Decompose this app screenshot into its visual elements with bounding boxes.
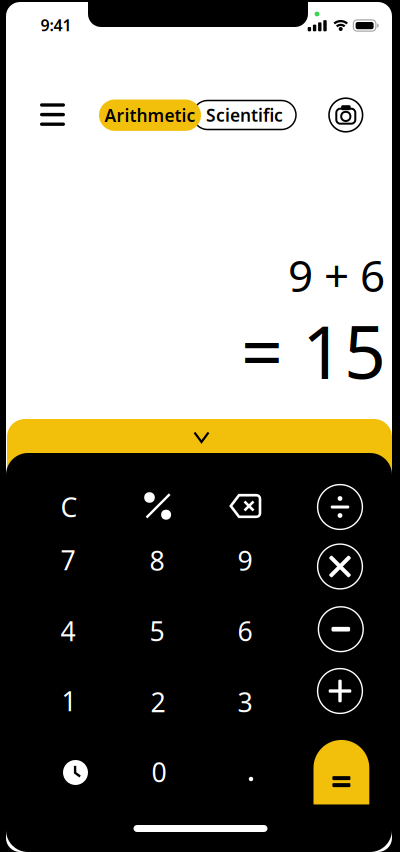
button[interactable]: Percent xyxy=(143,490,173,520)
staticText: Scientific xyxy=(206,103,283,126)
staticText: 3 xyxy=(237,684,252,720)
staticText: 8 xyxy=(149,543,164,578)
button[interactable]: 6 xyxy=(206,604,284,658)
staticText: C xyxy=(60,489,77,525)
button[interactable]: 8 xyxy=(118,533,196,587)
button[interactable]: 3 xyxy=(206,675,284,729)
button[interactable]: Subtract xyxy=(318,606,364,652)
button[interactable]: Multiply xyxy=(317,543,363,589)
button[interactable]: Divide xyxy=(317,484,363,530)
button[interactable]: Collapse keypad xyxy=(7,419,392,499)
button[interactable]: History xyxy=(62,759,88,785)
button[interactable]: 0 xyxy=(120,745,198,799)
staticText: 5 xyxy=(149,613,164,649)
button[interactable]: 7 xyxy=(29,533,107,587)
staticText: 7 xyxy=(60,542,75,578)
button[interactable]: Equals xyxy=(313,740,369,804)
staticText: 4 xyxy=(60,613,75,649)
button[interactable]: Scientific xyxy=(193,100,296,129)
staticText: 2 xyxy=(150,684,165,720)
staticText: 9 + 6 xyxy=(288,246,385,304)
staticText: 9:41 xyxy=(40,14,71,36)
staticText: 6 xyxy=(237,613,252,649)
staticText: 9 xyxy=(237,543,252,578)
staticText: 0 xyxy=(151,754,166,790)
button[interactable]: 4 xyxy=(29,604,107,658)
button[interactable]: 5 xyxy=(118,604,196,658)
staticText: Arithmetic xyxy=(104,104,195,127)
button[interactable]: Menu xyxy=(34,97,70,133)
button[interactable]: Add xyxy=(317,668,363,714)
button[interactable]: Decimal point xyxy=(207,745,285,799)
button[interactable]: 2 xyxy=(119,675,197,729)
button[interactable]: Delete xyxy=(228,492,262,520)
button[interactable]: Camera xyxy=(326,95,366,135)
button[interactable]: 1 xyxy=(30,674,108,728)
button[interactable]: C xyxy=(30,480,108,534)
staticText: 1 xyxy=(61,683,76,719)
button[interactable]: 9 xyxy=(206,533,284,587)
staticText: = 15 xyxy=(241,302,386,399)
button[interactable]: Arithmetic xyxy=(99,99,201,131)
